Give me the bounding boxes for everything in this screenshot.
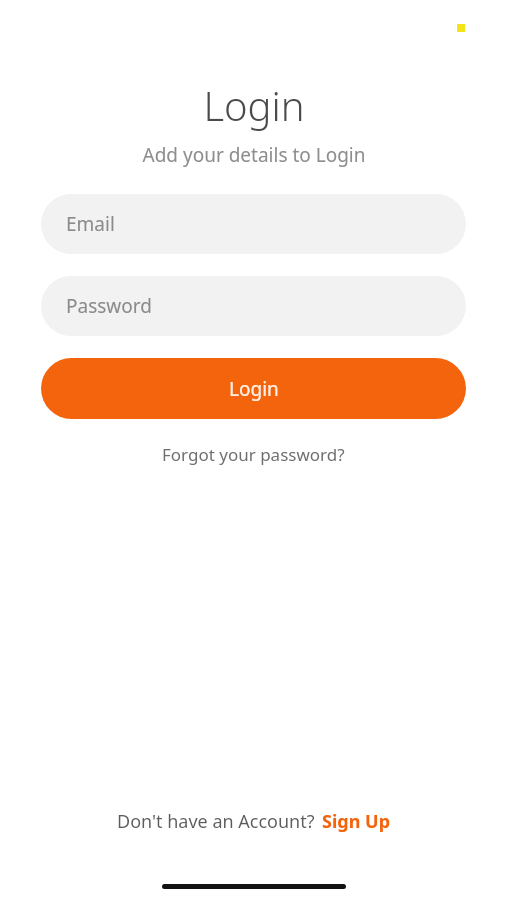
staticText: Sign Up <box>322 809 391 834</box>
staticText: Password <box>66 293 152 319</box>
staticText: Don't have an Account? <box>117 809 315 834</box>
staticText: Forgot your password? <box>162 443 345 466</box>
staticText: Login <box>203 78 305 132</box>
button[interactable]: Email <box>41 194 466 254</box>
button[interactable]: Sign Up <box>322 809 391 834</box>
button[interactable]: Password <box>41 276 466 336</box>
staticText: Add your details to Login <box>142 142 366 168</box>
button[interactable]: Forgot your password? <box>154 439 353 470</box>
staticText: Email <box>66 211 115 237</box>
button[interactable]: Login <box>41 358 466 419</box>
staticText: Login <box>229 376 279 402</box>
